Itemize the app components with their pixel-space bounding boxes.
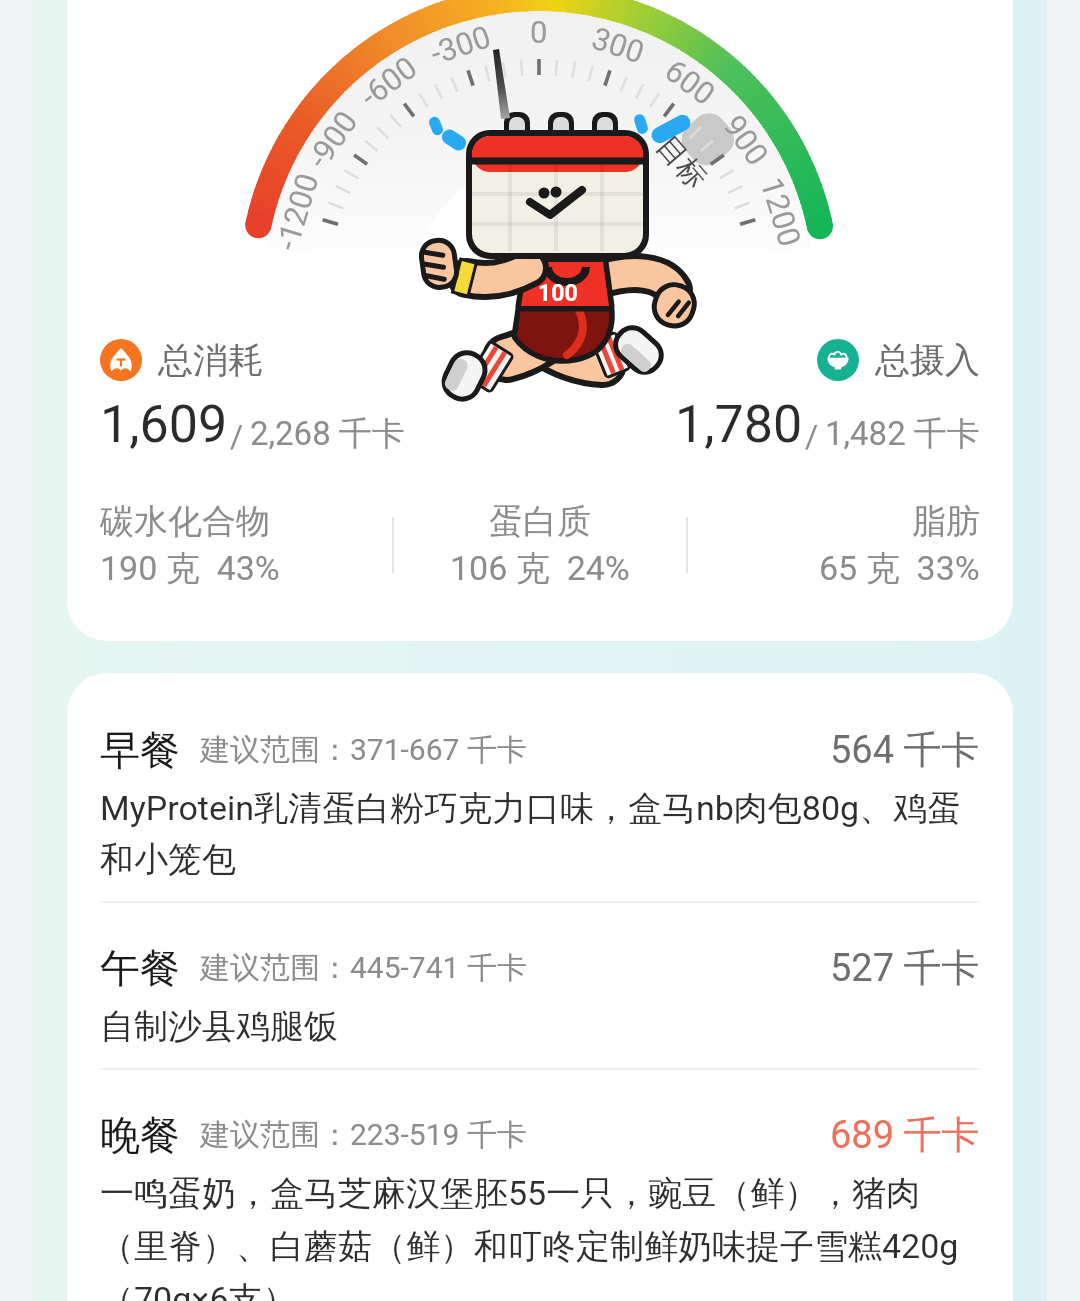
staticText: 总消耗 [158, 338, 263, 382]
staticText: 900 [716, 108, 776, 172]
staticText: 65 克 33% [819, 547, 980, 590]
staticText: 0 [530, 14, 548, 50]
staticText: 自制沙县鸡腿饭 [100, 1005, 338, 1048]
staticText: 建议范围： [200, 731, 350, 769]
staticText: 190 克 43% [100, 547, 280, 590]
staticText: 689 千卡 [830, 1111, 980, 1159]
staticText: -900 [300, 104, 364, 175]
staticText: 564 千卡 [830, 726, 980, 774]
staticText: -600 [353, 49, 424, 114]
staticText: MyProtein乳清蛋白粉巧克力口味，盒马nb肉包80g、鸡蛋和小笼包 [100, 787, 980, 881]
staticText: 2,268 千卡 [250, 413, 405, 455]
staticText: 总摄入 [875, 338, 980, 382]
button[interactable]: 总摄入 [817, 338, 980, 382]
button[interactable]: 总消耗 [100, 338, 263, 382]
button[interactable]: Calorie gauge [67, 0, 1013, 330]
staticText: 碳水化合物 [100, 500, 270, 543]
button[interactable]: 晚餐 [100, 1070, 980, 1301]
staticText: 建议范围： [200, 949, 350, 987]
staticText: 建议范围： [200, 1116, 350, 1154]
staticText: 1200 [754, 173, 808, 251]
staticText: 一鸣蛋奶，盒马芝麻汉堡胚55一只，豌豆（鲜），猪肉（里脊）、白蘑菇（鲜）和叮咚定… [100, 1172, 980, 1301]
staticText: / [805, 417, 819, 455]
staticText: 371-667 千卡 [350, 731, 527, 769]
staticText: 445-741 千卡 [350, 949, 527, 987]
staticText: 目标 [649, 128, 715, 196]
staticText: 脂肪 [912, 500, 980, 543]
staticText: 1,482 千卡 [825, 413, 980, 455]
staticText: / [230, 417, 244, 455]
staticText: 午餐 [100, 943, 180, 993]
staticText: 1,780 [675, 394, 803, 455]
staticText: 106 克 24% [450, 547, 630, 590]
button[interactable]: 脂肪 [688, 500, 980, 590]
staticText: -300 [426, 18, 495, 71]
staticText: 600 [658, 52, 722, 112]
staticText: 蛋白质 [489, 500, 591, 543]
staticText: 223-519 千卡 [350, 1116, 527, 1154]
staticText: 1,609 [100, 394, 228, 455]
staticText: 527 千卡 [830, 944, 980, 992]
staticText: 晚餐 [100, 1110, 180, 1160]
button[interactable]: 碳水化合物 [100, 500, 392, 590]
staticText: -1200 [268, 168, 326, 254]
staticText: 早餐 [100, 725, 180, 775]
button[interactable]: 蛋白质 [394, 500, 686, 590]
button[interactable]: 午餐 [100, 903, 980, 1068]
staticText: 100 [538, 280, 578, 307]
button[interactable]: 早餐 [100, 685, 980, 901]
staticText: 300 [588, 20, 649, 70]
